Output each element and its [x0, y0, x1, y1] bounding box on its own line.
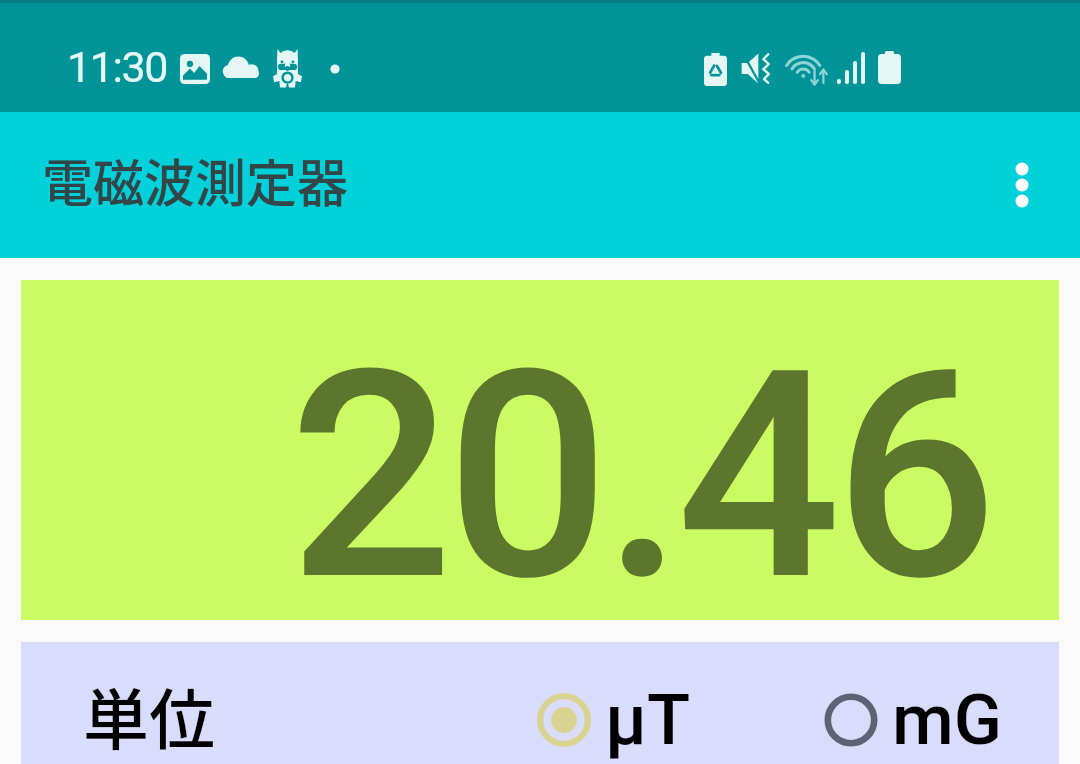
staticText: 11:30 — [67, 42, 167, 92]
staticText: mG — [892, 678, 1003, 761]
staticText: μT — [605, 678, 691, 761]
staticText: 単位 — [83, 667, 215, 763]
staticText: 電磁波測定器 — [42, 143, 349, 217]
button[interactable]: Unit microtesla, selected — [532, 678, 691, 761]
button[interactable]: More options — [998, 161, 1046, 209]
staticText: 20.46 — [288, 308, 991, 646]
button[interactable]: Unit milligauss — [819, 678, 1003, 761]
